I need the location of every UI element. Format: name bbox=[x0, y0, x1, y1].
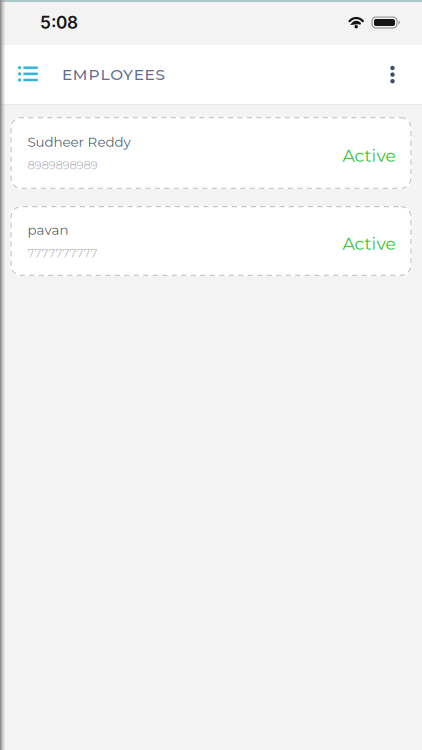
staticText: 8989898989 bbox=[27, 158, 97, 172]
staticText: Active bbox=[342, 145, 395, 166]
staticText: 7777777777 bbox=[27, 246, 97, 260]
staticText: Active bbox=[342, 233, 395, 254]
button[interactable]: pavan bbox=[10, 206, 411, 276]
staticText: EMPLOYEES bbox=[62, 65, 165, 84]
staticText: Sudheer Reddy bbox=[27, 134, 130, 150]
staticText: pavan bbox=[27, 222, 68, 238]
staticText: 5:08 bbox=[40, 12, 78, 33]
button[interactable]: Menu bbox=[0, 66, 62, 82]
button[interactable]: More options bbox=[377, 65, 422, 83]
button[interactable]: Sudheer Reddy bbox=[10, 117, 411, 189]
